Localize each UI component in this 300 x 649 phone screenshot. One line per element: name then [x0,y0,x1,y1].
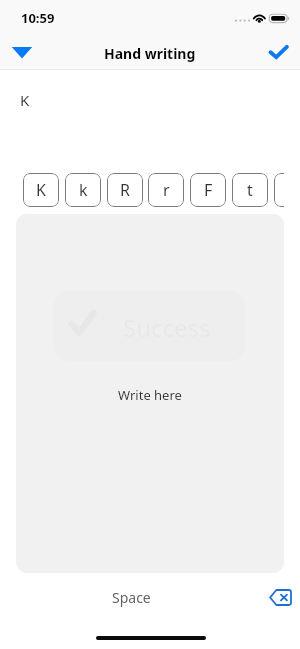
button[interactable]: Hide keyboard [5,35,39,69]
button[interactable]: r [148,173,184,207]
button[interactable]: Space [112,588,151,607]
button[interactable]: Done [261,35,295,69]
button[interactable]: K [23,173,59,207]
button[interactable]: F [190,173,226,207]
button[interactable]: k [65,173,101,207]
staticText: r [163,179,170,201]
staticText: K [20,90,30,110]
staticText: Space [112,588,151,607]
staticText: t [247,179,253,201]
staticText: K [36,179,46,201]
staticText: k [79,179,88,201]
staticText: 10:59 [21,9,55,27]
button[interactable]: Success [16,214,284,573]
staticText: Hand writing [104,44,196,63]
button[interactable]: Backspace [263,580,297,614]
staticText: F [204,179,213,201]
staticText: Write here [118,386,182,404]
button[interactable]: R [107,173,143,207]
button[interactable]: t [232,173,268,207]
button[interactable]: T [274,173,284,207]
staticText: R [120,179,130,201]
